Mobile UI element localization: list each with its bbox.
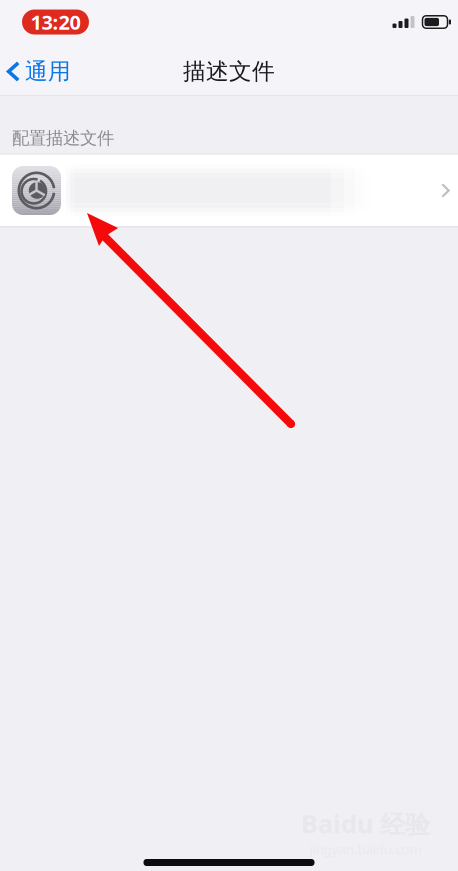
staticText: 通用 <box>25 58 71 85</box>
staticText: 描述文件 <box>183 58 275 85</box>
button[interactable]: 通用 <box>0 51 81 92</box>
staticText: 13:20 <box>30 9 80 35</box>
button[interactable] <box>0 154 458 226</box>
staticText: 配置描述文件 <box>12 127 114 149</box>
staticText: Baidu 经验 <box>301 806 430 840</box>
